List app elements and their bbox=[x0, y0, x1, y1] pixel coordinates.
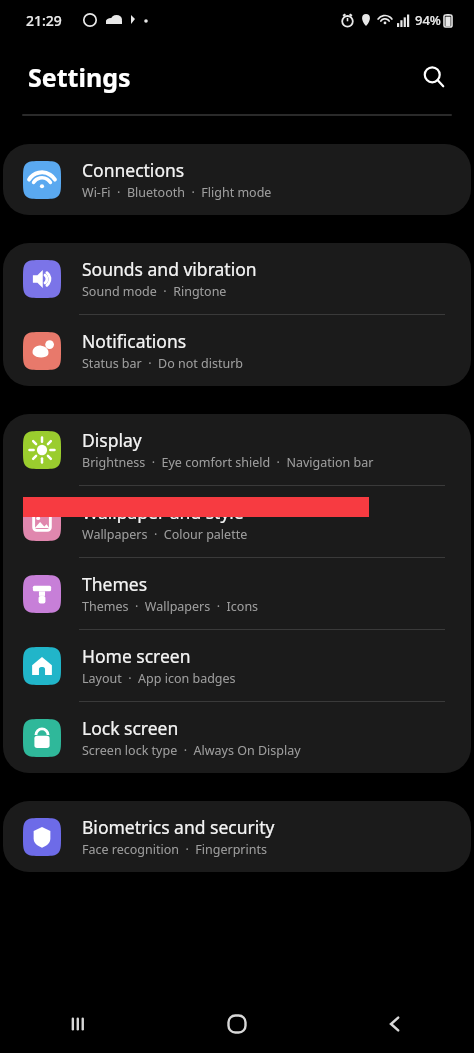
staticText: Brightness · Eye comfort shield · Naviga… bbox=[82, 454, 374, 471]
staticText: Status bar · Do not disturb bbox=[82, 355, 244, 372]
button[interactable]: Display bbox=[3, 414, 471, 485]
button[interactable]: Home screen bbox=[3, 630, 471, 701]
button[interactable]: Connections bbox=[3, 144, 471, 215]
button[interactable]: Wallpaper and style bbox=[3, 486, 471, 557]
button[interactable]: Recent apps bbox=[0, 995, 158, 1053]
button[interactable]: Biometrics and security bbox=[3, 801, 471, 872]
staticText: Connections bbox=[82, 158, 185, 182]
staticText: Notifications bbox=[82, 329, 187, 353]
staticText: Home screen bbox=[82, 644, 191, 668]
button[interactable]: Sounds and vibration bbox=[3, 243, 471, 314]
button[interactable]: Home bbox=[158, 995, 316, 1053]
button[interactable]: Search bbox=[412, 55, 456, 99]
staticText: Themes bbox=[82, 572, 148, 596]
staticText: Themes · Wallpapers · Icons bbox=[82, 598, 259, 615]
staticText: 94% bbox=[415, 11, 441, 29]
staticText: Sounds and vibration bbox=[82, 257, 257, 281]
button[interactable]: Themes bbox=[3, 558, 471, 629]
staticText: 21:29 bbox=[26, 11, 62, 30]
button[interactable]: Lock screen bbox=[3, 702, 471, 773]
staticText: Face recognition · Fingerprints bbox=[82, 841, 267, 858]
staticText: Wallpaper and style bbox=[82, 500, 244, 524]
staticText: Wallpapers · Colour palette bbox=[82, 526, 248, 543]
staticText: Lock screen bbox=[82, 716, 179, 740]
staticText: Layout · App icon badges bbox=[82, 670, 236, 687]
button[interactable]: Back bbox=[316, 995, 474, 1053]
staticText: Sound mode · Ringtone bbox=[82, 283, 227, 300]
staticText: Biometrics and security bbox=[82, 815, 275, 839]
staticText: Settings bbox=[28, 60, 131, 94]
button[interactable]: Notifications bbox=[3, 315, 471, 386]
staticText: Screen lock type · Always On Display bbox=[82, 742, 301, 759]
staticText: Wi-Fi · Bluetooth · Flight mode bbox=[82, 184, 272, 201]
staticText: Display bbox=[82, 428, 142, 452]
